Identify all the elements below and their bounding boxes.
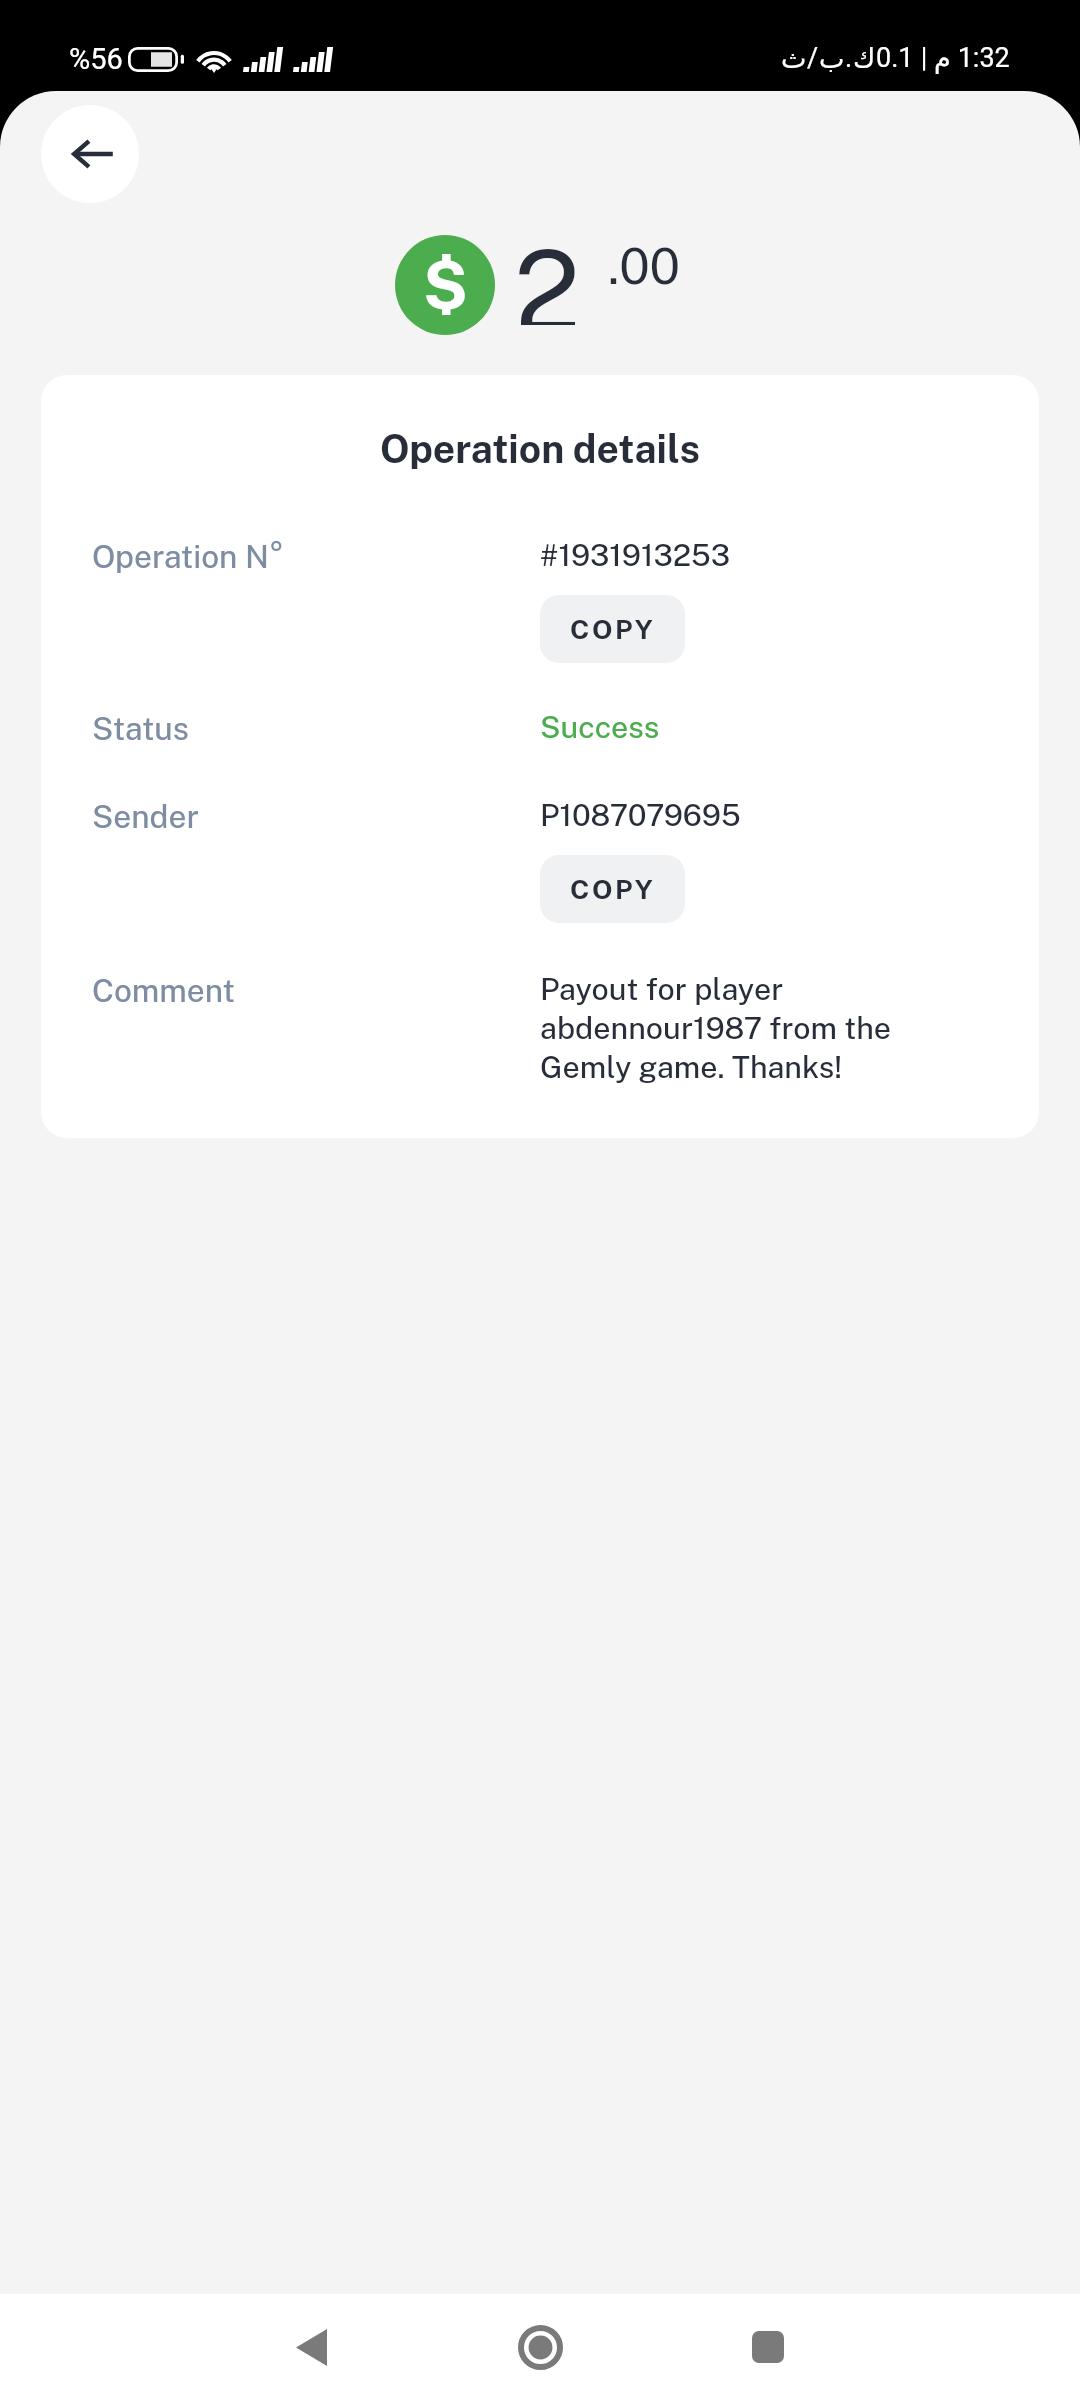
staticText: 1:32 [951,42,1010,74]
staticText: ث [781,43,807,74]
staticText: P1087079695 [540,797,741,833]
staticText: Success [540,709,660,745]
staticText: Operation N° [92,538,540,575]
staticText: ك [853,43,876,74]
staticText: Payout for player abdennour1987 from the… [540,971,939,1084]
staticText: ب [819,43,845,74]
staticText: م [934,43,951,74]
button[interactable]: Home [480,2301,600,2393]
staticText: / [807,42,819,74]
staticText: Status [92,710,540,747]
staticText: COPY [570,873,656,905]
button[interactable]: Recent apps [708,2301,828,2393]
button[interactable]: Back [251,2301,371,2393]
staticText: $ [423,246,468,324]
button[interactable]: Back [41,105,139,203]
button[interactable]: COPY [540,855,685,923]
staticText: 0.1 [876,42,914,74]
staticText: Operation details [41,426,1039,472]
staticText: Sender [92,798,540,835]
staticText: #1931913253 [540,537,731,573]
staticText: | [914,42,934,74]
staticText: Comment [92,972,540,1009]
staticText: .00 [608,236,680,295]
staticText: 2 [514,225,581,325]
staticText: COPY [570,613,656,645]
staticText: %56 [69,42,123,76]
button[interactable]: COPY [540,595,685,663]
staticText: . [845,42,853,74]
